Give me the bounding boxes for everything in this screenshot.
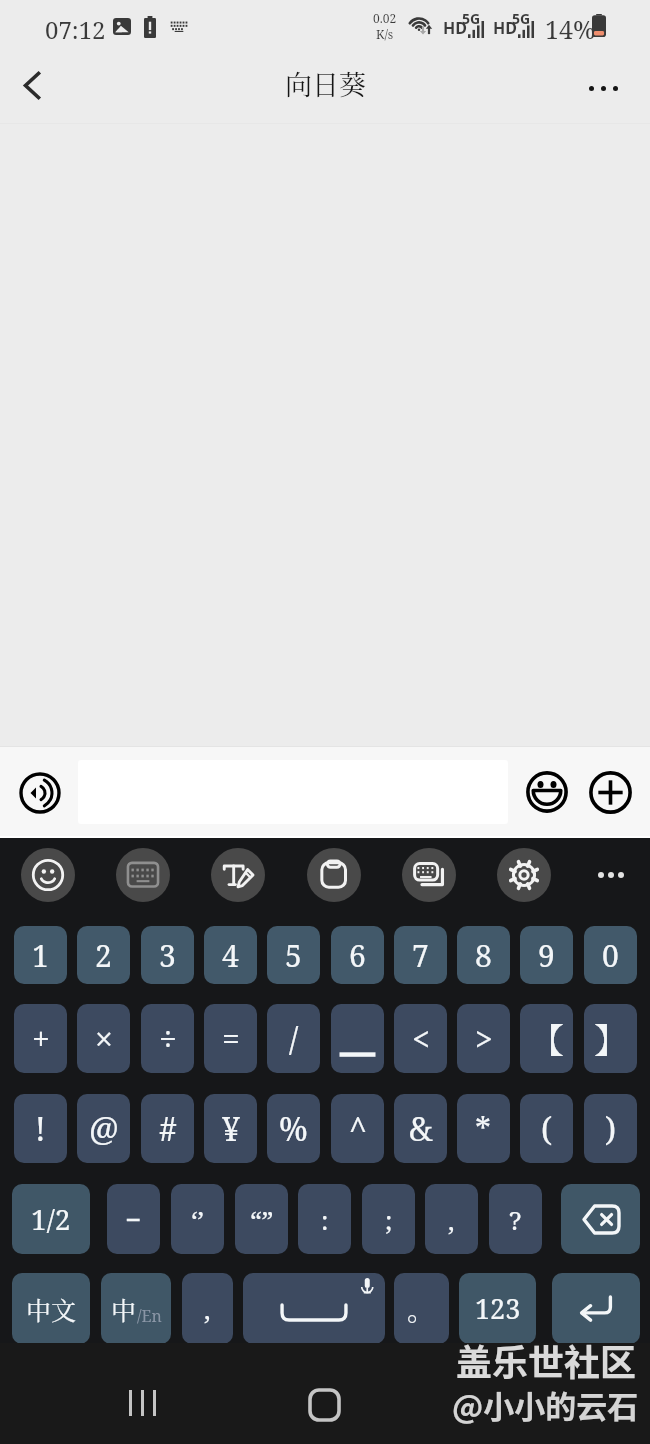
button[interactable]: 2	[77, 926, 130, 984]
staticText: 3	[159, 935, 176, 976]
button[interactable]: 0	[584, 926, 637, 984]
button[interactable]: 8	[457, 926, 510, 984]
staticText: #	[159, 1107, 177, 1151]
button[interactable]: 中文	[12, 1273, 90, 1344]
button[interactable]: Skin	[402, 848, 456, 902]
button[interactable]: 【	[520, 1004, 573, 1073]
button[interactable]: “”	[235, 1184, 288, 1254]
button[interactable]: More options	[572, 57, 634, 119]
button[interactable]: ÷	[141, 1004, 194, 1073]
button[interactable]: ;	[362, 1184, 415, 1254]
button[interactable]: 4	[204, 926, 257, 984]
staticText: 5G	[462, 9, 481, 28]
staticText: K/s	[376, 26, 394, 42]
button[interactable]	[331, 1004, 384, 1073]
button[interactable]: ‘’	[171, 1184, 224, 1254]
button[interactable]: Settings	[497, 848, 551, 902]
staticText: 8	[475, 935, 492, 976]
button[interactable]: >	[457, 1004, 510, 1073]
staticText: 14%	[545, 12, 596, 46]
staticText: 6	[349, 935, 366, 976]
button[interactable]: Add	[589, 771, 632, 814]
staticText: !	[35, 1107, 46, 1151]
staticText: 中文	[26, 1291, 77, 1327]
button[interactable]: Home	[294, 1385, 354, 1425]
staticText: 1	[32, 935, 49, 976]
staticText: ×	[95, 1017, 113, 1061]
staticText: 2	[95, 935, 112, 976]
button[interactable]: /	[267, 1004, 320, 1073]
staticText: 向日葵	[285, 64, 366, 103]
staticText: 5G	[512, 9, 531, 28]
staticText: >	[475, 1017, 493, 1061]
button[interactable]: #	[141, 1094, 194, 1163]
button[interactable]: 1	[14, 926, 67, 984]
button[interactable]: +	[14, 1004, 67, 1073]
staticText: 【	[530, 1014, 564, 1063]
button[interactable]: *	[457, 1094, 510, 1163]
button[interactable]: More	[584, 848, 638, 902]
button[interactable]	[561, 1184, 640, 1254]
staticText: 盖乐世社区	[456, 1334, 637, 1386]
staticText: ^	[349, 1107, 367, 1151]
button[interactable]: Emoji	[21, 848, 75, 902]
staticText: /	[289, 1017, 299, 1061]
button[interactable]: 3	[141, 926, 194, 984]
staticText: =	[222, 1017, 240, 1061]
button[interactable]: Back	[1, 54, 63, 116]
button[interactable]: <	[394, 1004, 447, 1073]
button[interactable]: =	[204, 1004, 257, 1073]
button[interactable]: :	[298, 1184, 351, 1254]
staticText: HD	[493, 17, 517, 39]
button[interactable]: 】	[584, 1004, 637, 1073]
button[interactable]: ,	[182, 1273, 233, 1344]
staticText: ?	[509, 1202, 522, 1237]
staticText: HD	[443, 17, 467, 39]
button[interactable]: 中	[101, 1273, 171, 1344]
staticText: 0.02	[373, 10, 397, 26]
button[interactable]: 7	[394, 926, 447, 984]
button[interactable]	[552, 1273, 640, 1344]
button[interactable]: &	[394, 1094, 447, 1163]
staticText: 123	[475, 1290, 521, 1327]
button[interactable]: Voice input	[19, 772, 61, 814]
button[interactable]: 6	[331, 926, 384, 984]
staticText: 】	[594, 1014, 628, 1063]
button[interactable]: Clipboard	[307, 848, 361, 902]
button[interactable]: ×	[77, 1004, 130, 1073]
button[interactable]: (	[520, 1094, 573, 1163]
button[interactable]: @	[77, 1094, 130, 1163]
staticText: 7	[412, 935, 429, 976]
staticText: ÷	[159, 1017, 177, 1061]
button[interactable]: 1/2	[12, 1184, 90, 1254]
button[interactable]: 5	[267, 926, 320, 984]
staticText: ,	[204, 1291, 211, 1326]
staticText: :	[321, 1202, 329, 1237]
staticText: 4	[222, 935, 239, 976]
staticText: 9	[538, 935, 555, 976]
staticText: &	[409, 1107, 433, 1151]
button[interactable]: !	[14, 1094, 67, 1163]
button[interactable]: )	[584, 1094, 637, 1163]
button[interactable]: Handwriting	[211, 848, 265, 902]
button[interactable]: Keyboard layout	[116, 848, 170, 902]
staticText: ‘’	[191, 1202, 204, 1237]
staticText: 5	[285, 935, 302, 976]
button[interactable]: Emoji	[526, 771, 568, 813]
button[interactable]: −	[107, 1184, 160, 1254]
staticText: ;	[385, 1202, 393, 1237]
button[interactable]: 123	[459, 1273, 536, 1344]
button[interactable]: %	[267, 1094, 320, 1163]
button[interactable]	[243, 1273, 385, 1344]
button[interactable]: 9	[520, 926, 573, 984]
button[interactable]: Recents	[112, 1383, 172, 1423]
button[interactable]: ^	[331, 1094, 384, 1163]
button[interactable]: ?	[489, 1184, 542, 1254]
button[interactable]: ¥	[204, 1094, 257, 1163]
button[interactable]: ,	[425, 1184, 478, 1254]
button[interactable]: 。	[394, 1273, 449, 1344]
staticText: 。	[407, 1289, 436, 1329]
staticText: )	[605, 1107, 617, 1151]
staticText: “”	[250, 1202, 274, 1237]
